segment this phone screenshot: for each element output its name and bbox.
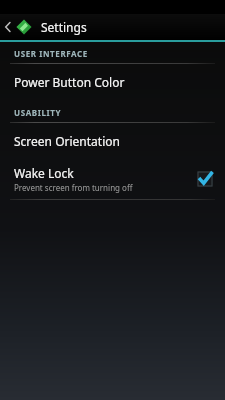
staticText: USER INTERFACE xyxy=(14,48,88,59)
button[interactable]: Navigate up xyxy=(0,14,35,40)
button[interactable]: Power Button Color xyxy=(0,64,225,100)
staticText: Screen Orientation xyxy=(14,133,120,149)
button[interactable]: Wake Lock xyxy=(0,159,225,199)
staticText: Wake Lock xyxy=(14,165,74,181)
staticText: USABILITY xyxy=(14,107,62,118)
staticText: Settings xyxy=(41,19,87,35)
button[interactable]: Screen Orientation xyxy=(0,123,225,159)
staticText: Prevent screen from turning off xyxy=(14,182,133,193)
button[interactable]: Wake Lock checkbox xyxy=(197,171,213,187)
staticText: Power Button Color xyxy=(14,74,125,90)
